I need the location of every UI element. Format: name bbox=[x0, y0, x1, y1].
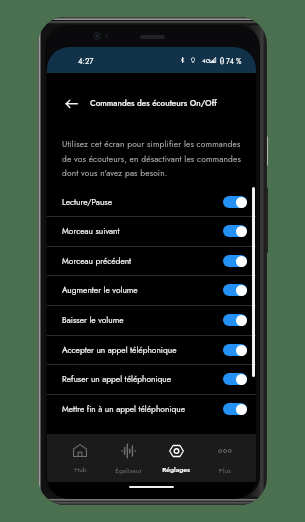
button[interactable]: Mettre fin à un appel téléphonique bbox=[47, 394, 256, 424]
staticText: Refuser un appel téléphonique bbox=[62, 373, 223, 385]
button[interactable]: Plus bbox=[201, 434, 249, 482]
button[interactable]: Baisser le volume bbox=[47, 305, 256, 335]
staticText: Plus bbox=[219, 466, 231, 476]
button[interactable]: Égaliseur bbox=[104, 434, 152, 482]
button[interactable]: Augmenter le volume bbox=[47, 275, 256, 305]
staticText: Lecture/Pause bbox=[62, 196, 223, 208]
button[interactable]: Accepter un appel téléphonique bbox=[47, 335, 256, 365]
staticText: 74 % bbox=[226, 56, 242, 66]
button[interactable]: Refuser un appel téléphonique bbox=[47, 364, 256, 394]
staticText: Augmenter le volume bbox=[62, 284, 223, 296]
button[interactable]: Back bbox=[65, 93, 83, 113]
staticText: Morceau suivant bbox=[62, 225, 223, 237]
staticText: Accepter un appel téléphonique bbox=[62, 344, 223, 356]
staticText: 4:27 bbox=[78, 56, 94, 67]
staticText: Morceau précédent bbox=[62, 255, 223, 267]
staticText: Égaliseur bbox=[115, 466, 142, 476]
button[interactable]: Lecture/Pause bbox=[47, 187, 256, 217]
staticText: Réglages bbox=[162, 465, 190, 475]
staticText: Baisser le volume bbox=[62, 314, 223, 326]
staticText: 4G bbox=[202, 56, 211, 65]
staticText: Mettre fin à un appel téléphonique bbox=[62, 403, 223, 415]
staticText: Utilisez cet écran pour simplifier les c… bbox=[62, 138, 248, 179]
staticText: Commandes des écouteurs On/Off bbox=[90, 97, 217, 109]
button[interactable]: Morceau précédent bbox=[47, 246, 256, 276]
staticText: Hub bbox=[74, 465, 87, 475]
button[interactable]: Hub bbox=[56, 434, 104, 482]
button[interactable]: Morceau suivant bbox=[47, 216, 256, 246]
button[interactable]: Réglages bbox=[152, 434, 200, 482]
